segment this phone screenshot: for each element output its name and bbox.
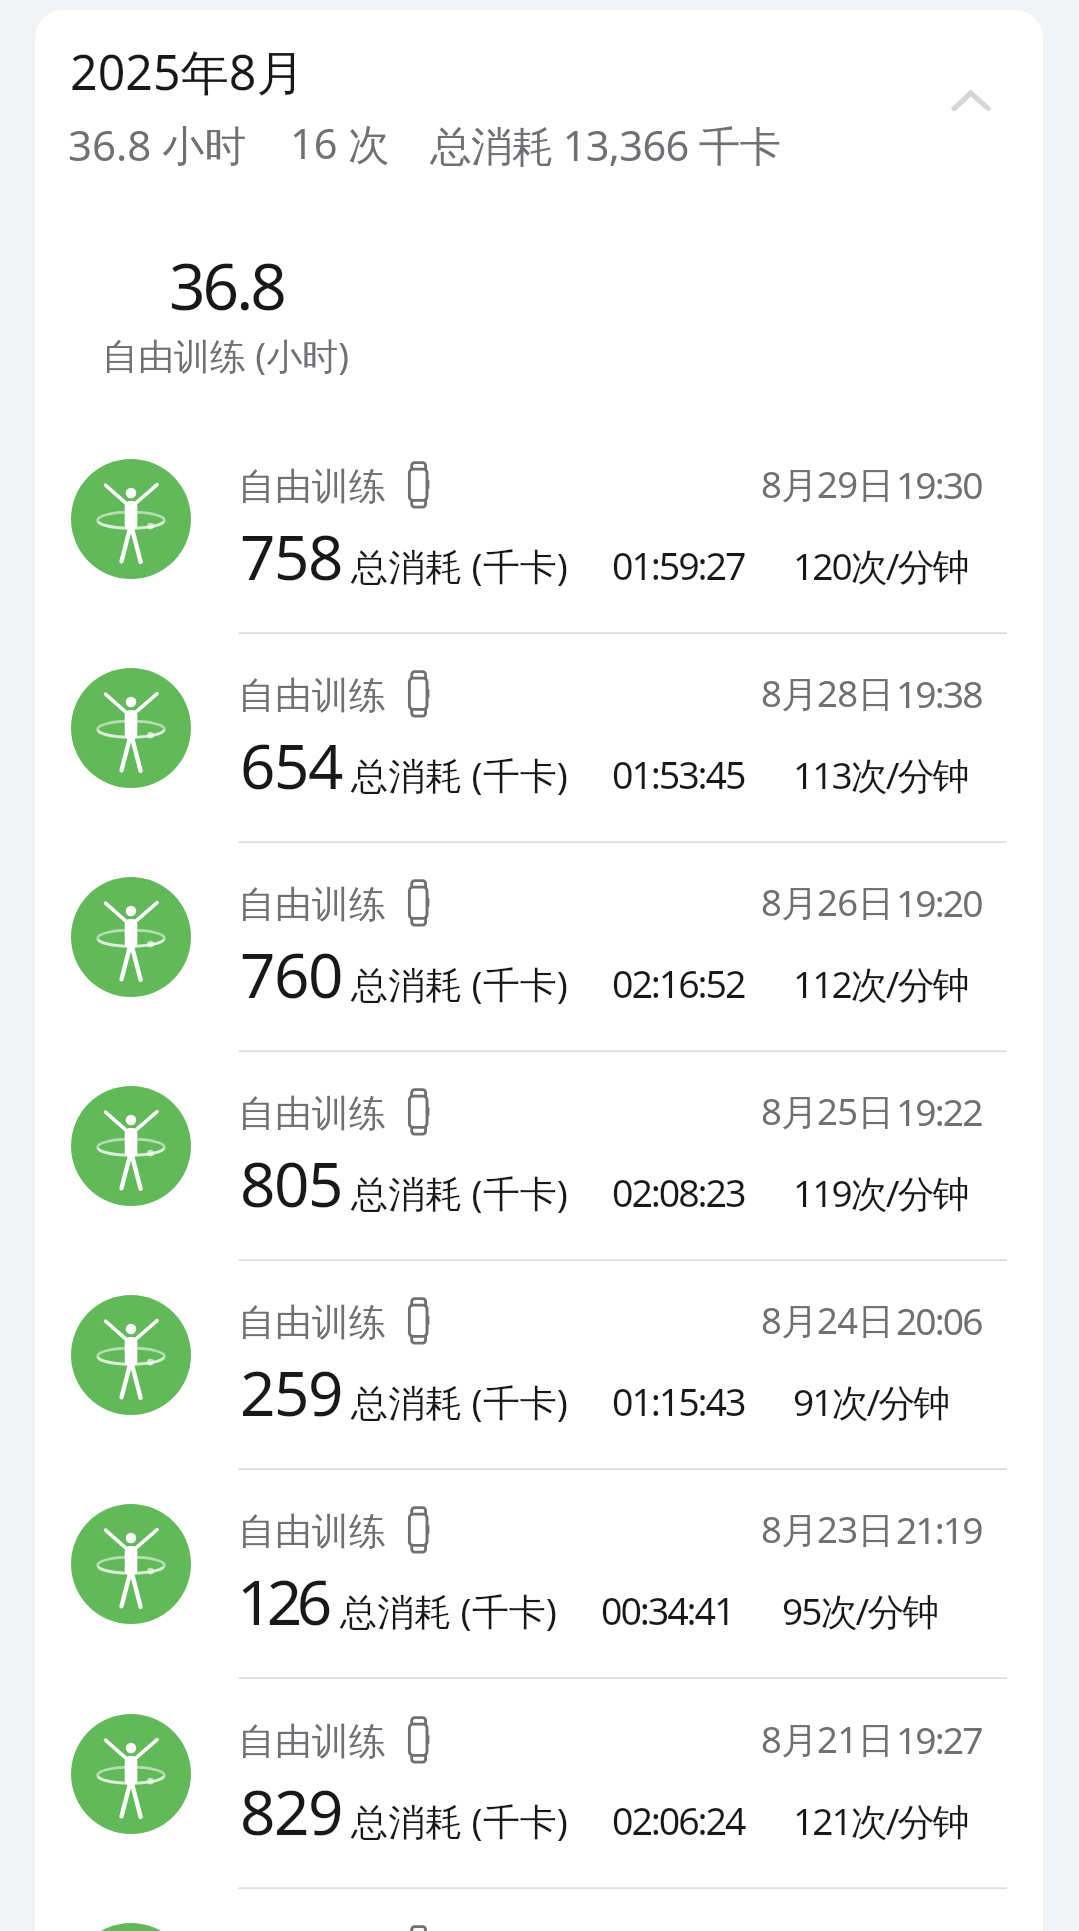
staticText: 16 次: [290, 115, 390, 172]
staticText: 8月25日: [761, 1086, 894, 1136]
staticText: 760: [240, 932, 343, 1016]
staticText: 91次/分钟: [793, 1376, 949, 1427]
staticText: 总消耗 (千卡): [351, 1376, 568, 1427]
staticText: 自由训练: [238, 1508, 386, 1555]
staticText: 19:30: [896, 459, 982, 510]
staticText: 126: [237, 1559, 327, 1643]
staticText: 805: [240, 1141, 343, 1225]
staticText: 120次/分钟: [793, 540, 968, 591]
button[interactable]: 自由训练: [35, 1887, 1043, 1931]
staticText: 总消耗 (千卡): [351, 958, 568, 1009]
staticText: 总消耗 (千卡): [340, 1585, 557, 1636]
staticText: 总消耗 (千卡): [351, 1167, 568, 1218]
staticText: 113次/分钟: [793, 749, 968, 800]
button[interactable]: 自由训练: [35, 1050, 1043, 1262]
staticText: 121次/分钟: [793, 1795, 968, 1846]
staticText: 01:53:45: [612, 749, 745, 800]
staticText: 259: [240, 1350, 343, 1434]
staticText: 21:19: [896, 1504, 982, 1555]
staticText: 36.8: [169, 242, 284, 329]
staticText: 总消耗 (千卡): [351, 1795, 568, 1846]
staticText: 654: [240, 723, 343, 807]
staticText: 00:34:41: [601, 1585, 734, 1636]
staticText: 112次/分钟: [793, 958, 968, 1009]
staticText: 02:06:24: [612, 1795, 745, 1846]
staticText: 总消耗 (千卡): [351, 540, 568, 591]
staticText: 自由训练: [238, 881, 386, 928]
button[interactable]: Collapse: [936, 68, 1006, 138]
staticText: 19:20: [896, 877, 982, 928]
staticText: 自由训练: [238, 1090, 386, 1137]
staticText: 总消耗 (千卡): [351, 749, 568, 800]
staticText: 自由训练: [238, 463, 386, 510]
staticText: 20:06: [896, 1295, 982, 1346]
staticText: 02:16:52: [612, 958, 745, 1009]
staticText: 8月24日: [761, 1295, 894, 1345]
staticText: 自由训练: [238, 672, 386, 719]
staticText: 自由训练: [238, 1299, 386, 1346]
button[interactable]: 自由训练: [35, 1468, 1043, 1680]
staticText: 95次/分钟: [782, 1585, 938, 1636]
button[interactable]: 自由训练: [35, 1259, 1043, 1471]
staticText: 758: [240, 514, 343, 598]
button[interactable]: 自由训练: [35, 1678, 1043, 1890]
button[interactable]: 自由训练: [35, 423, 1043, 635]
staticText: 8月26日: [761, 877, 894, 927]
staticText: 8月29日: [761, 459, 894, 509]
staticText: 02:08:23: [612, 1167, 745, 1218]
staticText: 自由训练: [238, 1718, 386, 1765]
staticText: 2025年8月: [70, 38, 305, 104]
staticText: 829: [240, 1769, 343, 1853]
staticText: 8月28日: [761, 668, 894, 718]
button[interactable]: 自由训练: [35, 841, 1043, 1053]
button[interactable]: 自由训练: [35, 632, 1043, 844]
staticText: 自由训练 (小时): [102, 331, 349, 380]
staticText: 36.8 小时: [68, 116, 247, 173]
staticText: 总消耗 13,366 千卡: [430, 117, 781, 174]
staticText: 8月21日: [761, 1714, 894, 1764]
staticText: 119次/分钟: [793, 1167, 968, 1218]
staticText: 19:22: [896, 1086, 982, 1137]
staticText: 01:59:27: [612, 540, 745, 591]
staticText: 8月23日: [761, 1504, 894, 1554]
staticText: 19:38: [896, 668, 982, 719]
staticText: 19:27: [896, 1714, 982, 1765]
staticText: 01:15:43: [612, 1376, 745, 1427]
